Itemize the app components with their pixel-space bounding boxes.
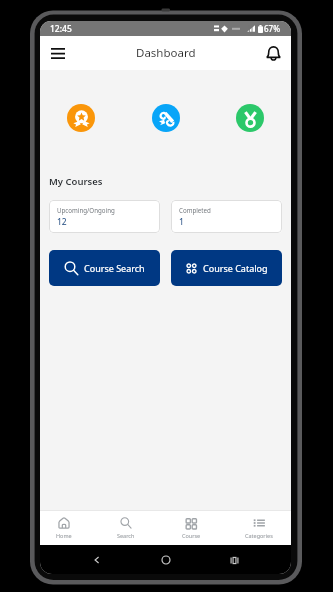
- button[interactable]: Back: [86, 549, 108, 571]
- staticText: Upcoming/Ongoing: [57, 206, 115, 214]
- button[interactable]: Home: [41, 511, 87, 545]
- button[interactable]: Search: [103, 511, 149, 545]
- button[interactable]: Upcoming/Ongoing: [49, 200, 160, 233]
- staticText: 67%: [264, 23, 280, 34]
- button[interactable]: Course Search: [49, 250, 160, 286]
- staticText: 12:45: [50, 23, 72, 35]
- button[interactable]: Badges: [236, 104, 264, 132]
- staticText: Course Catalog: [203, 262, 268, 274]
- button[interactable]: Awards: [67, 104, 95, 132]
- button[interactable]: Categories: [236, 511, 282, 545]
- staticText: 12: [57, 216, 67, 228]
- staticText: Completed: [179, 206, 211, 214]
- button[interactable]: Course: [168, 511, 214, 545]
- button[interactable]: Completed: [171, 200, 282, 233]
- button[interactable]: Course Catalog: [171, 250, 282, 286]
- staticText: Course Search: [84, 262, 145, 274]
- button[interactable]: Certificates: [152, 104, 180, 132]
- button[interactable]: Open navigation menu: [45, 40, 71, 66]
- staticText: Home: [56, 532, 72, 539]
- staticText: Search: [117, 532, 135, 539]
- button[interactable]: Recent apps: [223, 549, 245, 571]
- staticText: My Courses: [49, 175, 103, 188]
- staticText: Course: [182, 532, 201, 539]
- staticText: Dashboard: [136, 45, 196, 61]
- button[interactable]: Notifications: [260, 40, 286, 66]
- staticText: Categories: [245, 532, 273, 539]
- button[interactable]: Home: [155, 549, 177, 571]
- staticText: 1: [179, 216, 184, 228]
